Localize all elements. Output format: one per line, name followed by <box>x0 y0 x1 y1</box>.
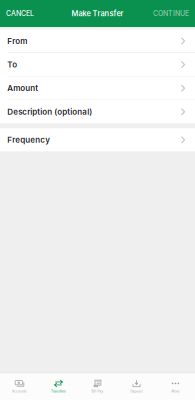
button[interactable]: Transfers <box>39 373 78 400</box>
staticText: To <box>7 60 17 69</box>
button[interactable]: Deposit <box>117 373 156 400</box>
button[interactable]: Description (optional) <box>0 100 195 123</box>
staticText: CANCEL <box>6 9 34 18</box>
button[interactable]: Frequency <box>0 128 195 151</box>
staticText: CONTINUE <box>153 9 189 18</box>
button[interactable]: CANCEL <box>0 0 40 27</box>
staticText: From <box>7 36 27 46</box>
staticText: Make Transfer <box>71 9 123 18</box>
button[interactable]: Accounts <box>0 373 39 400</box>
staticText: Bill Pay <box>91 389 103 393</box>
button[interactable]: More <box>156 373 195 400</box>
staticText: Transfers <box>51 389 66 393</box>
button[interactable]: CONTINUE <box>147 0 195 27</box>
staticText: Amount <box>7 83 38 93</box>
staticText: Accounts <box>12 389 27 393</box>
button[interactable]: To <box>0 53 195 76</box>
button[interactable]: Bill Pay <box>78 373 117 400</box>
button[interactable]: Amount <box>0 77 195 100</box>
staticText: Description (optional) <box>7 107 92 117</box>
staticText: Deposit <box>130 389 142 393</box>
staticText: More <box>171 389 179 393</box>
button[interactable]: From <box>0 29 195 52</box>
staticText: Frequency <box>7 135 50 145</box>
